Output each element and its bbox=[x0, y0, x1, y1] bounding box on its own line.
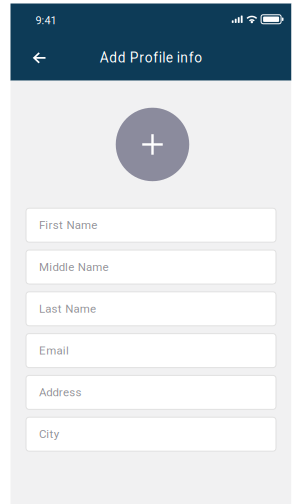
textField[interactable]: Address bbox=[39, 386, 276, 399]
staticText: Middle Name bbox=[39, 260, 108, 274]
textField[interactable]: City bbox=[39, 427, 276, 441]
button[interactable]: Add photo bbox=[116, 108, 189, 181]
staticText: Last Name bbox=[39, 302, 96, 315]
staticText: Last Name bbox=[39, 302, 96, 315]
textField[interactable]: Last Name bbox=[39, 302, 276, 315]
staticText: City bbox=[39, 427, 59, 441]
staticText: Email bbox=[39, 344, 69, 357]
staticText: First Name bbox=[39, 218, 97, 232]
staticText: Middle Name bbox=[39, 260, 108, 274]
staticText: Address bbox=[39, 386, 81, 399]
staticText: Email bbox=[39, 344, 69, 357]
staticText: 9:41 bbox=[35, 14, 56, 27]
textField[interactable]: Middle Name bbox=[39, 260, 276, 274]
textField[interactable]: First Name bbox=[39, 218, 276, 232]
staticText: Address bbox=[39, 386, 81, 399]
staticText: City bbox=[39, 427, 59, 441]
textField[interactable]: Email bbox=[39, 344, 276, 357]
button[interactable]: Back bbox=[10, 40, 55, 75]
staticText: First Name bbox=[39, 218, 97, 232]
staticText: Add Profile info bbox=[100, 50, 202, 66]
